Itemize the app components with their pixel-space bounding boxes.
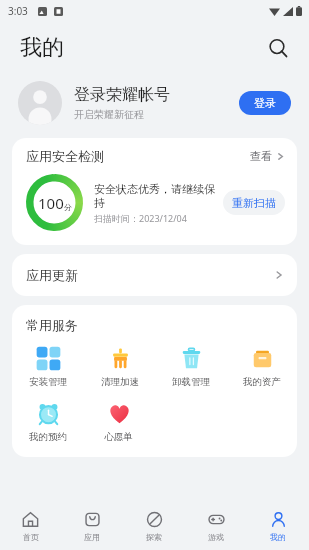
staticText: 应用更新 [26,267,274,283]
staticText: 开启荣耀新征程 [74,108,144,121]
staticText: 我的资产 [243,376,281,388]
button[interactable]: 清理加速 [84,343,155,390]
button[interactable]: 我的预约 [12,398,83,445]
button[interactable]: 重新扫描 [223,190,285,215]
staticText: 3:03 [8,4,28,18]
button[interactable]: 登录 [239,91,291,115]
staticText: 游戏 [208,532,224,542]
staticText: 分 [64,202,72,212]
button[interactable]: 应用 [61,502,123,550]
button[interactable]: 卸载管理 [155,343,226,390]
button[interactable]: 应用安全检测 [12,138,297,174]
button[interactable]: 游戏 [185,502,247,550]
staticText: 登录 [254,96,276,110]
staticText: 探索 [146,532,162,542]
button[interactable]: 首页 [0,502,61,550]
staticText: 应用安全检测 [26,148,250,164]
staticText: 首页 [23,532,39,542]
staticText: 重新扫描 [232,196,276,210]
staticText: 心愿单 [104,431,133,443]
button[interactable]: 应用更新 [12,254,297,296]
staticText: 卸载管理 [172,376,210,388]
staticText: 安装管理 [29,376,67,388]
staticText: 扫描时间：2023/12/04 [94,212,187,224]
staticText: 清理加速 [101,376,139,388]
staticText: 100 [38,193,64,213]
button[interactable]: 搜索 [261,31,295,65]
button[interactable]: 心愿单 [83,398,154,445]
button[interactable]: 我的资产 [226,343,297,390]
button[interactable]: 探索 [123,502,185,550]
staticText: 我的 [20,34,64,62]
staticText: 应用 [84,532,100,542]
button[interactable]: 登录荣耀帐号 [0,74,309,132]
button[interactable]: 安装管理 [12,343,84,390]
staticText: 查看 [250,149,272,163]
staticText: 我的 [270,532,286,542]
staticText: 登录荣耀帐号 [74,85,170,105]
staticText: 安全状态优秀，请继续保持 [94,182,217,210]
staticText: 我的预约 [29,431,67,443]
staticText: 常用服务 [26,317,78,333]
button[interactable]: 我的 [247,502,309,550]
